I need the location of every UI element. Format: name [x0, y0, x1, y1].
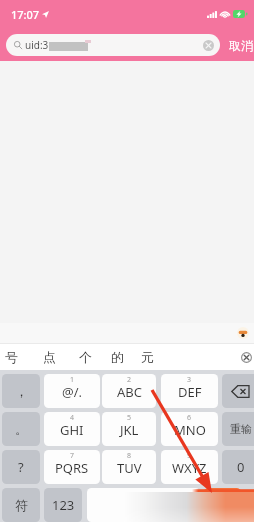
staticText: 4 — [70, 413, 75, 423]
staticText: 7 — [70, 451, 75, 461]
staticText: 个 — [79, 349, 92, 365]
staticText: WXYZ — [172, 459, 207, 477]
staticText: DEF — [178, 383, 202, 401]
staticText: 号 — [5, 349, 18, 365]
button[interactable]: 8 — [102, 450, 156, 484]
staticText: 搜索 — [211, 498, 235, 513]
staticText: 的 — [111, 349, 124, 365]
button[interactable]: Emoji keyboard — [237, 327, 249, 339]
staticText: 9 — [187, 451, 192, 461]
button[interactable]: 9 — [161, 450, 218, 484]
staticText: 1 — [70, 375, 75, 385]
staticText: uid:3 — [25, 38, 49, 52]
staticText: JKL — [120, 421, 139, 439]
button[interactable]: 取消 — [229, 38, 253, 53]
button[interactable]: 5 — [102, 412, 156, 446]
button[interactable]: 1 — [44, 374, 100, 408]
button[interactable]: 6 — [161, 412, 218, 446]
staticText: ABC — [117, 383, 142, 401]
button[interactable]: 个 — [71, 344, 99, 370]
staticText: ? — [18, 458, 24, 476]
staticText: PQRS — [55, 459, 89, 477]
staticText: 8 — [127, 451, 132, 461]
staticText: 17:07 — [11, 7, 40, 22]
button[interactable]: 的 — [103, 344, 131, 370]
button[interactable]: Close candidates — [239, 350, 253, 364]
staticText: 0 — [237, 458, 245, 476]
button[interactable]: Clear text — [203, 40, 214, 51]
staticText: TUV — [117, 459, 142, 477]
staticText: 元 — [141, 349, 154, 365]
staticText: 。 — [15, 421, 28, 437]
staticText: 重输 — [230, 422, 252, 436]
button[interactable]: 号 — [0, 344, 25, 370]
button[interactable]: uid:3 — [6, 34, 220, 56]
staticText: 3 — [187, 375, 192, 385]
button[interactable]: 符 — [2, 488, 40, 522]
staticText: 2 — [127, 375, 132, 385]
staticText: 符 — [15, 497, 28, 513]
staticText: @/. — [62, 383, 83, 401]
staticText: ， — [15, 383, 28, 399]
staticText: 点 — [43, 349, 56, 365]
button[interactable]: ? — [2, 450, 40, 484]
button[interactable]: 123 — [44, 488, 82, 522]
button[interactable]: Delete — [222, 374, 254, 408]
button[interactable]: 0 — [222, 450, 254, 484]
staticText: MNO — [174, 421, 206, 439]
button[interactable]: 元 — [133, 344, 161, 370]
button[interactable]: 。 — [2, 412, 40, 446]
button[interactable]: 点 — [35, 344, 63, 370]
button[interactable]: Space — [87, 488, 200, 522]
button[interactable]: 2 — [102, 374, 156, 408]
staticText: 5 — [127, 413, 132, 423]
staticText: 取消 — [229, 38, 253, 53]
button[interactable]: 3 — [161, 374, 218, 408]
button[interactable]: 重输 — [222, 412, 254, 446]
button[interactable]: 7 — [44, 450, 100, 484]
staticText: 6 — [187, 413, 192, 423]
staticText: GHI — [60, 421, 84, 439]
button[interactable]: 搜索 — [204, 488, 241, 522]
button[interactable]: 4 — [44, 412, 100, 446]
button[interactable]: ， — [2, 374, 40, 408]
staticText: 123 — [52, 496, 75, 514]
